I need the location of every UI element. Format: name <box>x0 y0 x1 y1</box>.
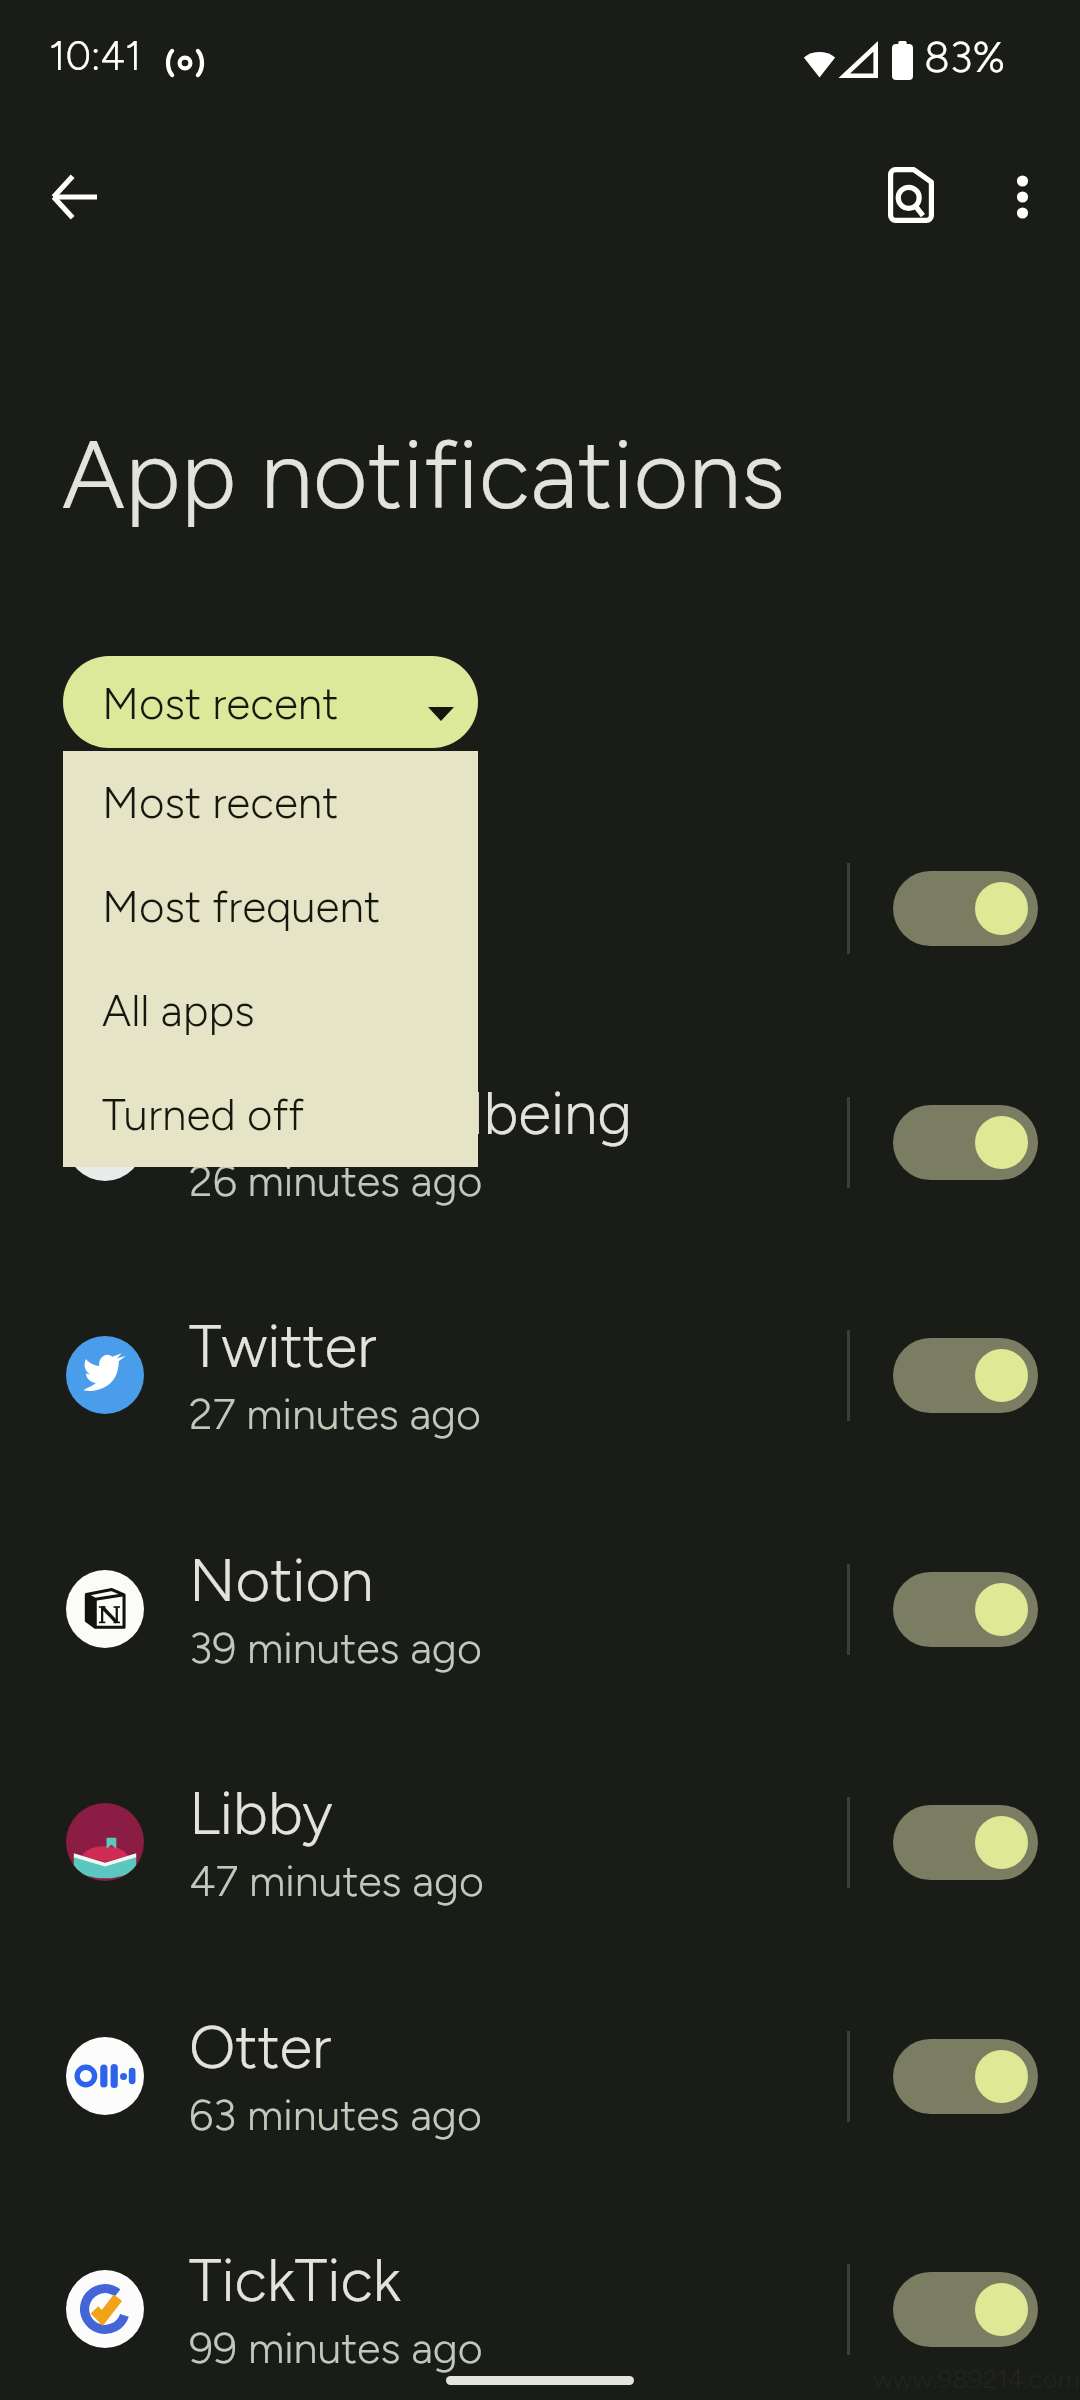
button[interactable]: Back <box>26 145 122 249</box>
staticText: Digital Wellbeing <box>189 1077 633 1149</box>
button[interactable]: Notion <box>0 1492 1080 1726</box>
staticText: Most recent <box>102 776 339 829</box>
button[interactable]: Search <box>859 143 963 247</box>
button[interactable]: Toggle notifications for Otter <box>878 2024 1052 2128</box>
staticText: 63 minutes ago <box>189 2089 482 2141</box>
staticText: Turned off <box>102 1088 305 1141</box>
button[interactable]: Toggle notifications for TickTick <box>878 2257 1052 2361</box>
staticText: 83% <box>924 32 1006 82</box>
staticText: Notion <box>189 1544 374 1616</box>
staticText: Most recent <box>102 677 339 730</box>
button[interactable]: Most frequent <box>63 855 478 959</box>
staticText: Gmail <box>189 843 342 915</box>
button[interactable]: TickTick <box>0 2192 1080 2400</box>
staticText: 26 minutes ago <box>189 1155 483 1207</box>
button[interactable]: Sort by Most recent <box>63 656 478 748</box>
button[interactable]: Toggle notifications for Twitter <box>878 1323 1052 1427</box>
staticText: 47 minutes ago <box>189 1855 484 1907</box>
button[interactable]: Toggle notifications for Notion <box>878 1557 1052 1661</box>
button[interactable]: Gmail <box>0 791 1080 1025</box>
button[interactable]: Twitter <box>0 1258 1080 1492</box>
staticText: 12 minutes ago <box>189 921 476 973</box>
staticText: Most frequent <box>102 880 381 933</box>
button[interactable]: Most recent <box>63 751 478 855</box>
staticText: Otter <box>189 2011 332 2083</box>
button[interactable]: All apps <box>63 959 478 1063</box>
button[interactable]: Toggle notifications for Libby <box>878 1790 1052 1894</box>
button[interactable]: Otter <box>0 1959 1080 2193</box>
button[interactable]: Toggle notifications for Gmail <box>878 856 1052 960</box>
staticText: All apps <box>102 984 255 1037</box>
button[interactable]: Toggle notifications for Digital Wellbei… <box>878 1090 1052 1194</box>
button[interactable]: Digital Wellbeing <box>0 1025 1080 1259</box>
button[interactable]: More options <box>970 145 1074 249</box>
staticText: App notifications <box>62 418 786 532</box>
button[interactable]: Turned off <box>63 1063 478 1167</box>
staticText: 10:41 <box>49 32 142 80</box>
staticText: Twitter <box>189 1310 377 1382</box>
button[interactable]: Libby <box>0 1725 1080 1959</box>
staticText: Libby <box>189 1777 333 1849</box>
staticText: 39 minutes ago <box>189 1622 482 1674</box>
staticText: TickTick <box>189 2244 401 2316</box>
staticText: 99 minutes ago <box>189 2322 483 2374</box>
staticText: 27 minutes ago <box>189 1388 482 1440</box>
